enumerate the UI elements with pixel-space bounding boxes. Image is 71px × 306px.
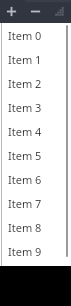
staticText: Item 8: [8, 220, 42, 235]
button[interactable]: Item 4: [0, 119, 71, 143]
staticText: Item 9: [8, 244, 42, 259]
button[interactable]: Item 3: [0, 95, 71, 119]
staticText: Item 1: [8, 52, 42, 67]
staticText: Item 3: [8, 100, 42, 115]
button[interactable]: Resize: [48, 0, 71, 23]
button[interactable]: Remove: [24, 0, 47, 23]
button[interactable]: Item 8: [0, 215, 71, 239]
staticText: Item 4: [8, 124, 42, 139]
staticText: Item 7: [8, 196, 42, 211]
button[interactable]: Item 9: [0, 239, 71, 263]
button[interactable]: Item 5: [0, 143, 71, 167]
staticText: Item 2: [8, 76, 42, 91]
button[interactable]: Item 2: [0, 71, 71, 95]
staticText: Item 5: [8, 148, 42, 163]
button[interactable]: Add: [0, 0, 23, 23]
button[interactable]: Item 1: [0, 47, 71, 71]
button[interactable]: Item 0: [0, 23, 71, 47]
staticText: Item 0: [8, 28, 42, 43]
button[interactable]: Item 7: [0, 191, 71, 215]
button[interactable]: Item 6: [0, 167, 71, 191]
staticText: Item 6: [8, 172, 42, 187]
